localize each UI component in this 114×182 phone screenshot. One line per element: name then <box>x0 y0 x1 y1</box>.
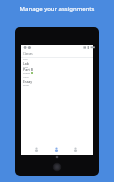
staticText: Part B <box>23 67 34 72</box>
staticText: Later <box>23 75 29 78</box>
staticText: Today <box>23 71 30 74</box>
button[interactable]: Part B <box>21 67 93 74</box>
button[interactable]: Home <box>30 143 42 155</box>
staticText: Manage your assignments <box>0 5 114 13</box>
staticText: Classes <box>23 52 33 56</box>
staticText: Essay <box>23 79 33 84</box>
button[interactable]: Profile <box>69 143 81 155</box>
staticText: Lab <box>23 61 30 66</box>
staticText: Due <box>23 57 28 60</box>
button[interactable]: Essay <box>21 79 93 86</box>
button[interactable]: Lab <box>21 61 93 68</box>
button[interactable]: Assignments <box>50 143 62 155</box>
staticText: Past <box>23 65 29 68</box>
staticText: Soon <box>23 83 29 86</box>
